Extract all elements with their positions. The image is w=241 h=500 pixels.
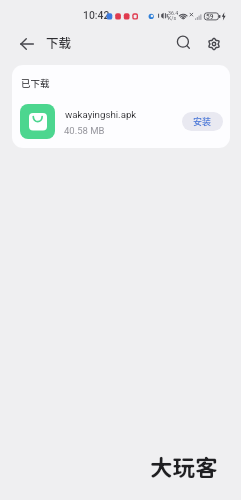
staticText: 10:42 (83, 9, 110, 21)
staticText: K/s (168, 15, 177, 21)
staticText: 大玩客 (150, 454, 218, 481)
staticText: 59 (206, 13, 214, 21)
staticText: 安装 (193, 115, 212, 128)
staticText: 36.4 (168, 10, 179, 16)
staticText: wakayingshi.apk (65, 109, 137, 120)
staticText: 40.58 MB (64, 125, 105, 136)
button[interactable]: Back (13, 30, 41, 58)
staticText: 下载 (46, 33, 72, 51)
button[interactable]: 安装 (182, 112, 223, 131)
button[interactable]: Settings (200, 30, 228, 58)
button[interactable]: Search (170, 29, 198, 57)
staticText: 已下载 (21, 76, 50, 90)
